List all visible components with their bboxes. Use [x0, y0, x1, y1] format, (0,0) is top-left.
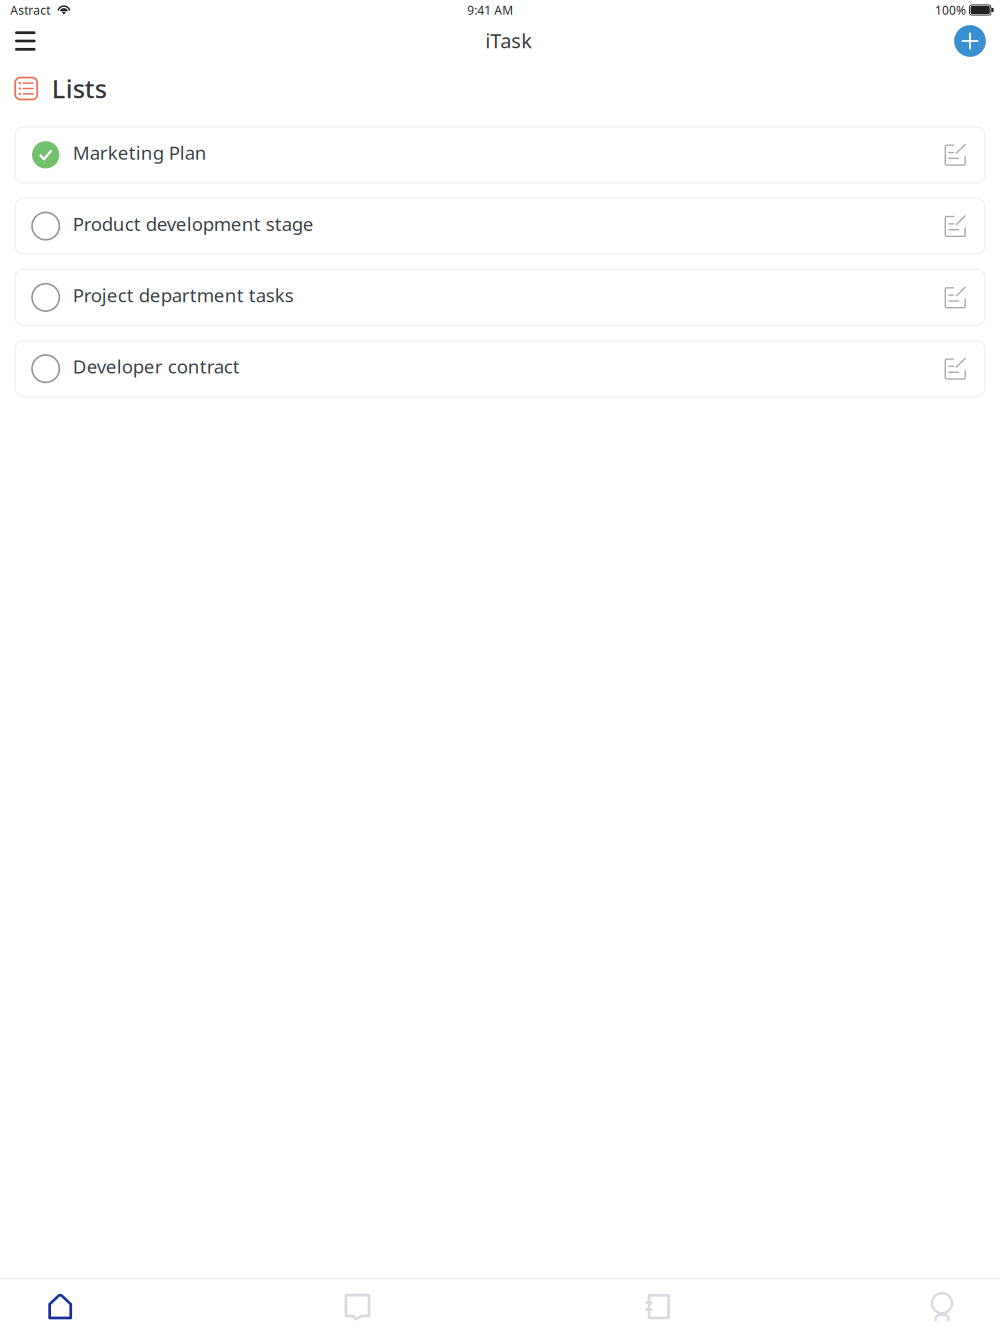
button[interactable]: Edit Developer contract [938, 349, 972, 389]
button[interactable]: Product development stage [15, 198, 985, 254]
button[interactable]: Add [949, 20, 991, 62]
staticText: iTask [485, 27, 532, 54]
staticText: Product development stage [73, 211, 314, 236]
button[interactable]: Notes [630, 1284, 684, 1330]
button[interactable]: Messages [330, 1284, 384, 1330]
button[interactable]: Developer contract [15, 341, 985, 397]
button[interactable]: Project department tasks [15, 269, 985, 325]
staticText: Project department tasks [73, 283, 294, 307]
staticText: Developer contract [73, 354, 240, 379]
button[interactable]: Edit Project department tasks [938, 277, 972, 317]
button[interactable]: Profile [915, 1284, 969, 1330]
button[interactable]: Marketing Plan [15, 127, 985, 183]
staticText: 9:41 AM [467, 2, 513, 18]
staticText: Marketing Plan [73, 140, 207, 165]
staticText: Lists [52, 72, 107, 105]
button[interactable]: Edit Product development stage [938, 206, 972, 246]
button[interactable]: Home [33, 1284, 87, 1330]
staticText: 100% [935, 2, 966, 18]
button[interactable]: Menu [2, 20, 48, 62]
button[interactable]: Edit Marketing Plan [938, 135, 972, 175]
staticText: Astract [10, 2, 50, 18]
